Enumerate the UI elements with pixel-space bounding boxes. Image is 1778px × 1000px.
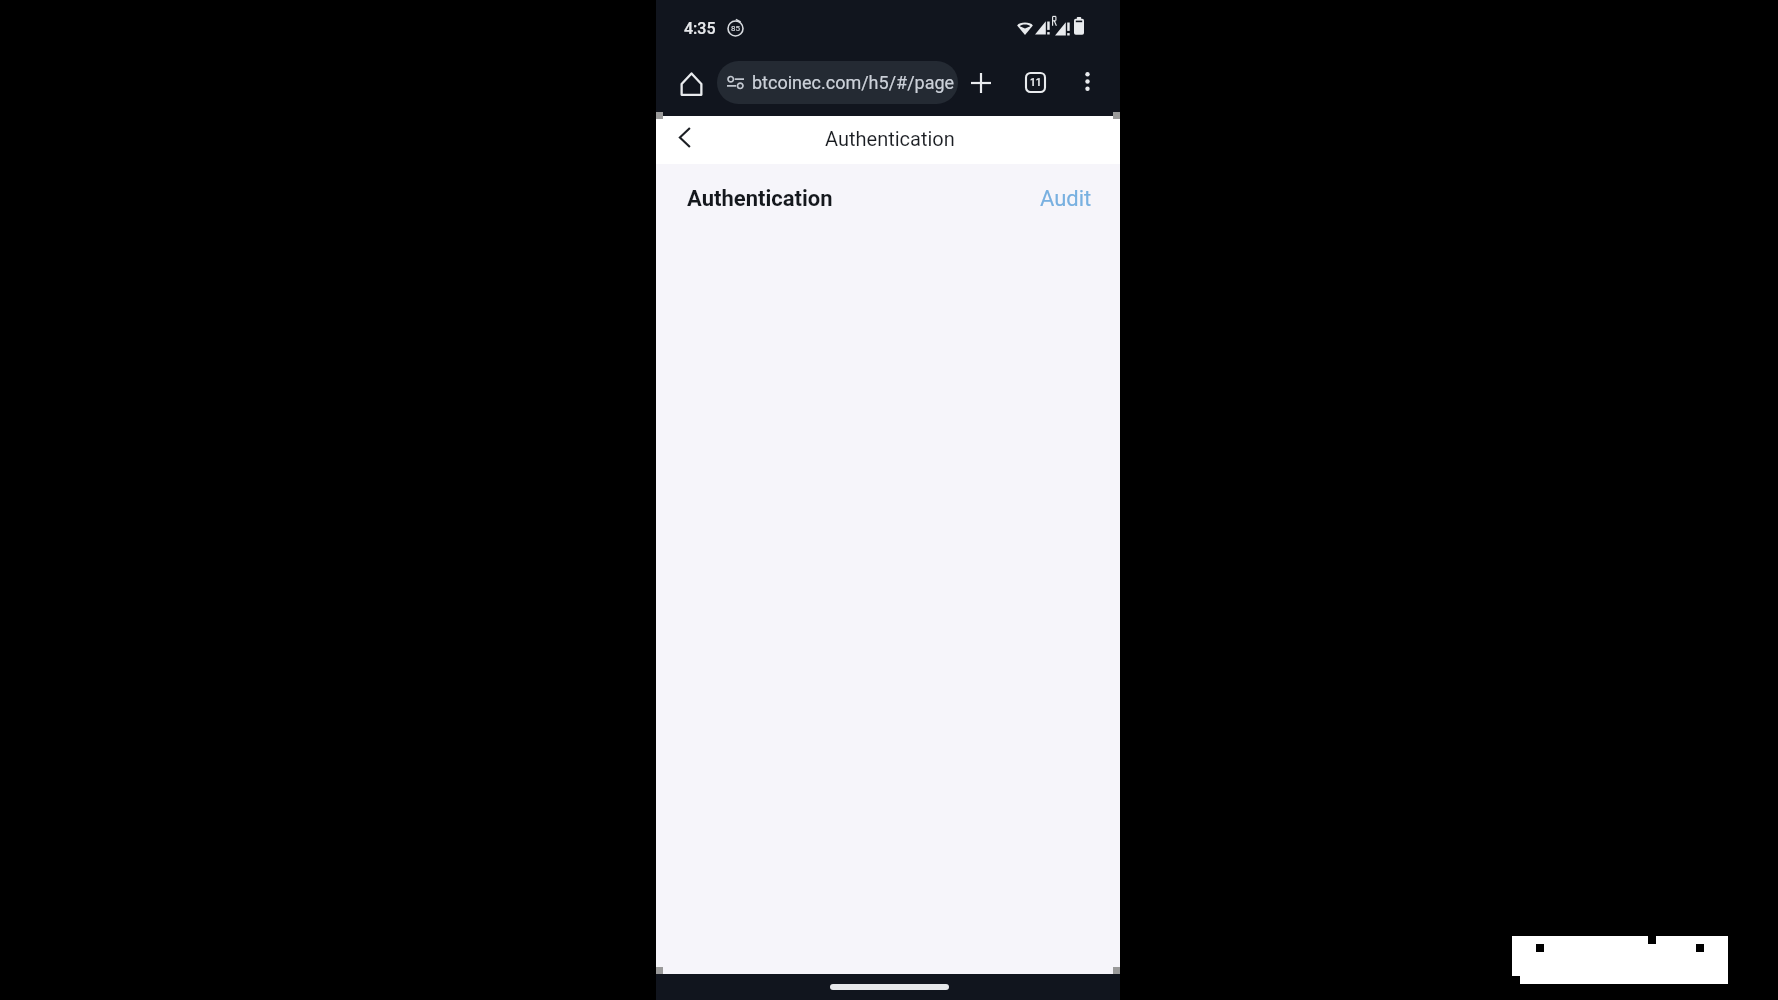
staticText: 4:35 [684,19,716,38]
staticText: Authentication [825,127,955,150]
button[interactable]: New tab [959,61,1002,104]
button[interactable]: More options [1067,61,1108,102]
button[interactable]: Authentication [656,164,1120,234]
button[interactable]: Home [669,62,713,106]
button[interactable]: Tabs [1014,61,1057,104]
button[interactable]: Back [662,115,706,159]
button[interactable]: btcoinec.com/h5/#/page [717,61,958,104]
staticText: 11 [1030,77,1042,89]
staticText: Authentication [687,186,833,212]
staticText: 85 [731,24,740,33]
staticText: btcoinec.com/h5/#/page [752,72,955,93]
staticText: Audit [1040,186,1092,212]
